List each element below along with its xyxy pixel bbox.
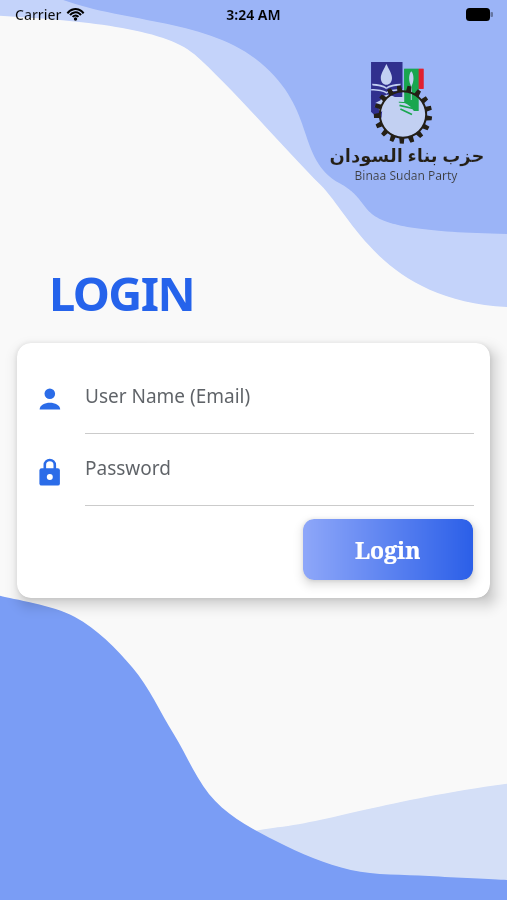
staticText: حزب بناء السودان [302,143,507,168]
staticText: Carrier [15,5,62,24]
staticText: User Name (Email) [85,383,251,409]
button[interactable]: Password field [35,450,85,506]
staticText: 3:24 AM [0,5,507,24]
staticText: Binaa Sudan Party [330,167,482,183]
staticText: Password [85,455,171,481]
staticText: Login [355,534,421,565]
button[interactable]: User name field [35,378,85,434]
button[interactable]: Login [303,519,473,580]
staticText: LOGIN [49,261,195,325]
